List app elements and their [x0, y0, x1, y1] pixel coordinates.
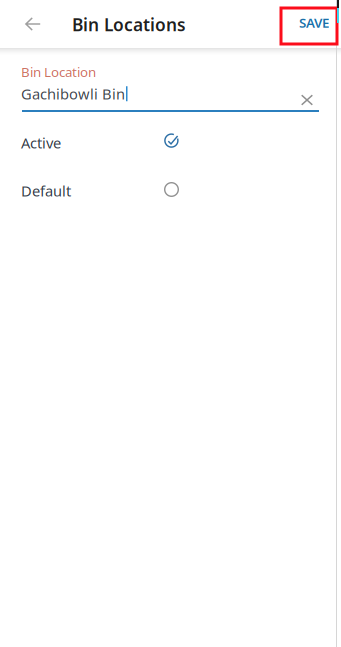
staticText: Bin Location	[21, 63, 96, 81]
button[interactable]: Active	[21, 130, 181, 150]
staticText: Bin Locations	[72, 13, 186, 36]
button[interactable]: Clear text	[295, 88, 319, 112]
staticText: Gachibowli Bin	[21, 84, 125, 103]
button[interactable]: SAVE	[290, 7, 338, 38]
button[interactable]: Default	[21, 178, 181, 198]
staticText: SAVE	[299, 14, 329, 31]
staticText: Default	[21, 181, 71, 200]
button[interactable]: Back	[13, 10, 53, 38]
staticText: Active	[21, 133, 61, 152]
